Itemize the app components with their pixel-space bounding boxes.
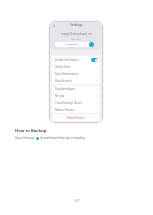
- staticText: Delete Device: [67, 116, 85, 120]
- button[interactable]: Verification: [55, 42, 90, 47]
- button[interactable]: Cloud Settings (Zone): [52, 99, 100, 106]
- staticText: Buss Account: [55, 79, 72, 83]
- staticText: Enable Verification: [55, 58, 79, 62]
- button[interactable]: Delete Device: [52, 114, 100, 121]
- staticText: 167: [74, 199, 80, 203]
- staticText: Detail Information: [55, 72, 79, 76]
- staticText: Verification: [66, 43, 79, 46]
- button[interactable]: Manual Version: [52, 106, 100, 113]
- button[interactable]: Database Agent: [52, 85, 100, 92]
- button[interactable]: Online Store: [52, 63, 100, 70]
- staticText: Settings: [70, 22, 83, 26]
- staticText: data 2311: [71, 38, 82, 41]
- staticText: Mr Java: [55, 94, 65, 98]
- button[interactable]: Back: [52, 24, 56, 28]
- button[interactable]: Detail Information: [52, 70, 100, 77]
- staticText: compa23deviceboard.net: [61, 32, 92, 36]
- staticText: Manual Version: [55, 108, 75, 112]
- button[interactable]: Enable Verification: [52, 56, 100, 63]
- staticText: Database Agent: [55, 87, 76, 91]
- staticText: at dashboard then tap on backup: [40, 136, 86, 140]
- button[interactable]: Buss Account: [52, 77, 100, 84]
- button[interactable]: Account: [89, 42, 94, 47]
- staticText: How to Backup: [15, 128, 47, 134]
- staticText: Open Settings: [15, 136, 35, 140]
- button[interactable]: Mr Java: [52, 92, 100, 99]
- staticText: Online Store: [55, 65, 71, 69]
- staticText: Cloud Settings (Zone): [55, 101, 82, 105]
